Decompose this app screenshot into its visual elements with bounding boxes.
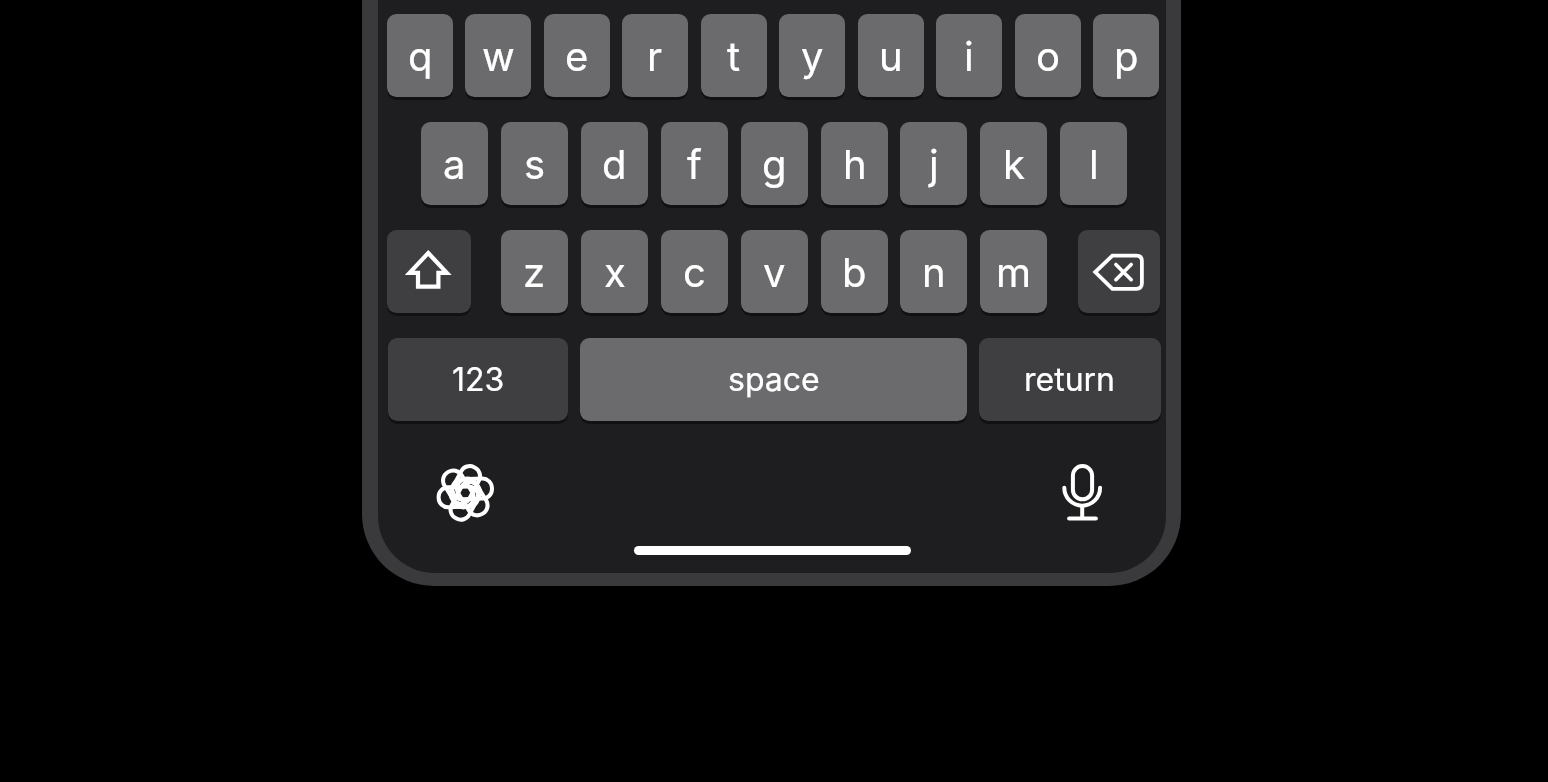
button[interactable]: k <box>980 122 1047 205</box>
staticText: c <box>683 248 706 296</box>
staticText: e <box>565 32 589 80</box>
staticText: w <box>482 32 515 80</box>
staticText: y <box>801 32 824 80</box>
button[interactable]: w <box>465 14 531 97</box>
button[interactable]: q <box>387 14 453 97</box>
button[interactable] <box>1078 230 1160 313</box>
staticText: m <box>996 248 1032 296</box>
staticText: v <box>763 248 786 296</box>
button[interactable]: r <box>622 14 688 97</box>
button[interactable]: g <box>741 122 808 205</box>
staticText: o <box>1036 32 1060 80</box>
staticText: z <box>523 248 546 296</box>
button[interactable]: c <box>661 230 728 313</box>
button[interactable]: space <box>580 338 967 421</box>
button[interactable] <box>387 230 471 313</box>
button[interactable]: z <box>501 230 568 313</box>
button[interactable]: b <box>821 230 888 313</box>
button[interactable]: v <box>741 230 808 313</box>
button[interactable]: u <box>858 14 924 97</box>
button[interactable]: f <box>661 122 728 205</box>
staticText: r <box>647 32 663 80</box>
staticText: u <box>879 32 903 80</box>
button[interactable]: l <box>1060 122 1127 205</box>
staticText: s <box>524 140 546 188</box>
button[interactable]: x <box>581 230 648 313</box>
staticText: x <box>604 248 626 296</box>
staticText: t <box>727 32 741 80</box>
staticText: l <box>1089 140 1099 188</box>
button[interactable]: i <box>936 14 1002 97</box>
staticText: i <box>964 32 974 80</box>
button[interactable]: o <box>1015 14 1081 97</box>
staticText: g <box>762 140 787 188</box>
button[interactable]: d <box>581 122 648 205</box>
staticText: h <box>843 140 867 188</box>
button[interactable]: s <box>501 122 568 205</box>
button[interactable]: a <box>421 122 488 205</box>
staticText: k <box>1003 140 1025 188</box>
button[interactable] <box>1052 462 1112 522</box>
staticText: f <box>687 140 702 188</box>
button[interactable]: h <box>821 122 888 205</box>
button[interactable]: p <box>1093 14 1159 97</box>
staticText: 123 <box>452 360 505 399</box>
staticText: b <box>842 248 867 296</box>
staticText: d <box>602 140 627 188</box>
button[interactable]: m <box>980 230 1047 313</box>
staticText: return <box>1024 360 1116 399</box>
button[interactable]: 123 <box>388 338 568 421</box>
staticText: n <box>922 248 946 296</box>
button[interactable]: y <box>779 14 845 97</box>
staticText: a <box>443 140 466 188</box>
staticText: space <box>728 360 820 399</box>
button[interactable]: t <box>701 14 767 97</box>
button[interactable]: j <box>900 122 967 205</box>
button[interactable]: e <box>544 14 610 97</box>
button[interactable]: return <box>979 338 1161 421</box>
staticText: p <box>1114 32 1139 80</box>
button[interactable] <box>435 463 495 523</box>
staticText: q <box>408 32 433 80</box>
button[interactable]: n <box>900 230 967 313</box>
staticText: j <box>929 140 939 188</box>
